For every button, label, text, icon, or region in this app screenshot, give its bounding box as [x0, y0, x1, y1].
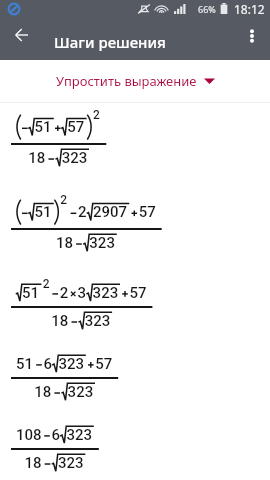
- button[interactable]: [0, 189, 270, 267]
- button[interactable]: [0, 267, 270, 338]
- staticText: Шаги решения: [54, 32, 166, 52]
- staticText: 18:12: [234, 1, 265, 17]
- button[interactable]: [0, 103, 270, 189]
- staticText: 66%: [198, 3, 216, 15]
- button[interactable]: More options: [240, 24, 264, 48]
- button[interactable]: [0, 409, 270, 480]
- button[interactable]: [0, 338, 270, 409]
- button[interactable]: Упростить выражение: [0, 60, 270, 102]
- staticText: Упростить выражение: [56, 72, 197, 90]
- button[interactable]: Back: [4, 23, 38, 47]
